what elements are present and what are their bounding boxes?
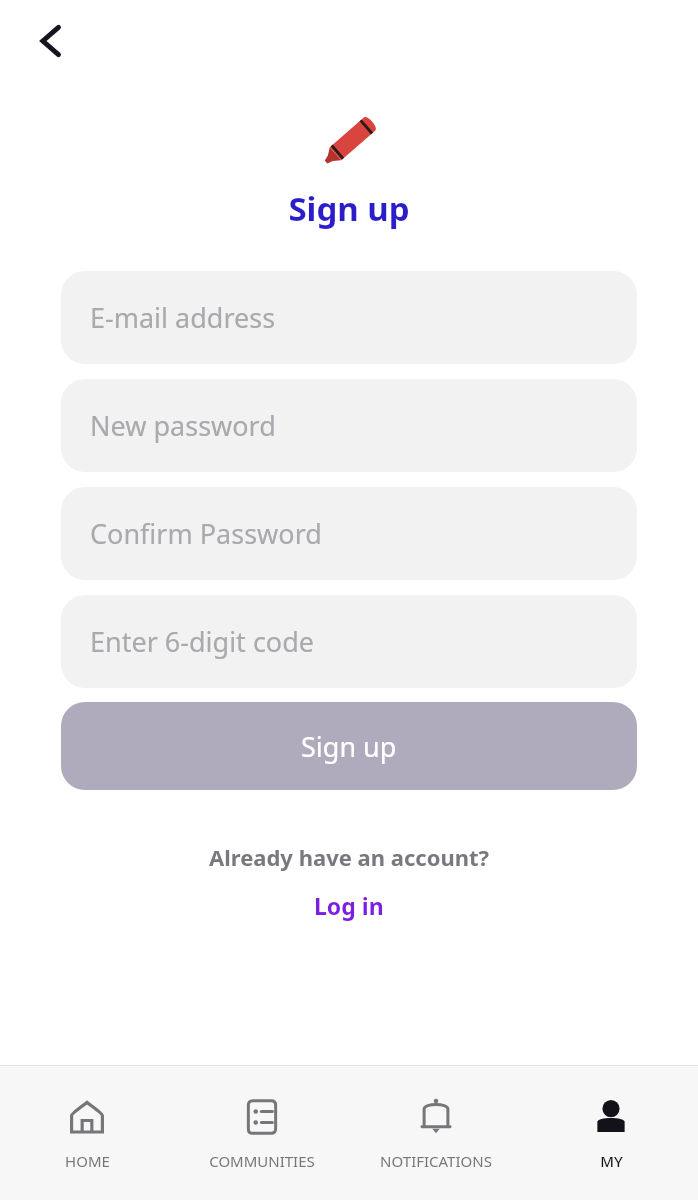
staticText: Sign up	[0, 186, 698, 231]
button[interactable]: E-mail address	[61, 271, 637, 364]
button[interactable]: HOME	[2, 1089, 172, 1177]
button[interactable]: New password	[61, 379, 637, 472]
staticText: New password	[90, 407, 276, 444]
button[interactable]: COMMUNITIES	[177, 1089, 347, 1177]
staticText: Already have an account?	[0, 842, 698, 872]
button[interactable]: Confirm Password	[61, 487, 637, 580]
staticText: NOTIFICATIONS	[380, 1151, 492, 1171]
button[interactable]: MY	[526, 1089, 696, 1177]
staticText: COMMUNITIES	[209, 1151, 315, 1171]
staticText: HOME	[65, 1151, 110, 1171]
button[interactable]: Log in	[296, 886, 402, 925]
staticText: Sign up	[301, 728, 397, 765]
staticText: Confirm Password	[90, 515, 322, 552]
button[interactable]: NOTIFICATIONS	[351, 1089, 521, 1177]
staticText: MY	[600, 1151, 623, 1171]
staticText: E-mail address	[90, 299, 276, 336]
staticText: Enter 6-digit code	[90, 623, 315, 660]
button[interactable]: Sign up	[61, 702, 637, 790]
button[interactable]: Enter 6-digit code	[61, 595, 637, 688]
staticText: Log in	[314, 890, 384, 921]
button[interactable]: Back	[20, 10, 82, 72]
